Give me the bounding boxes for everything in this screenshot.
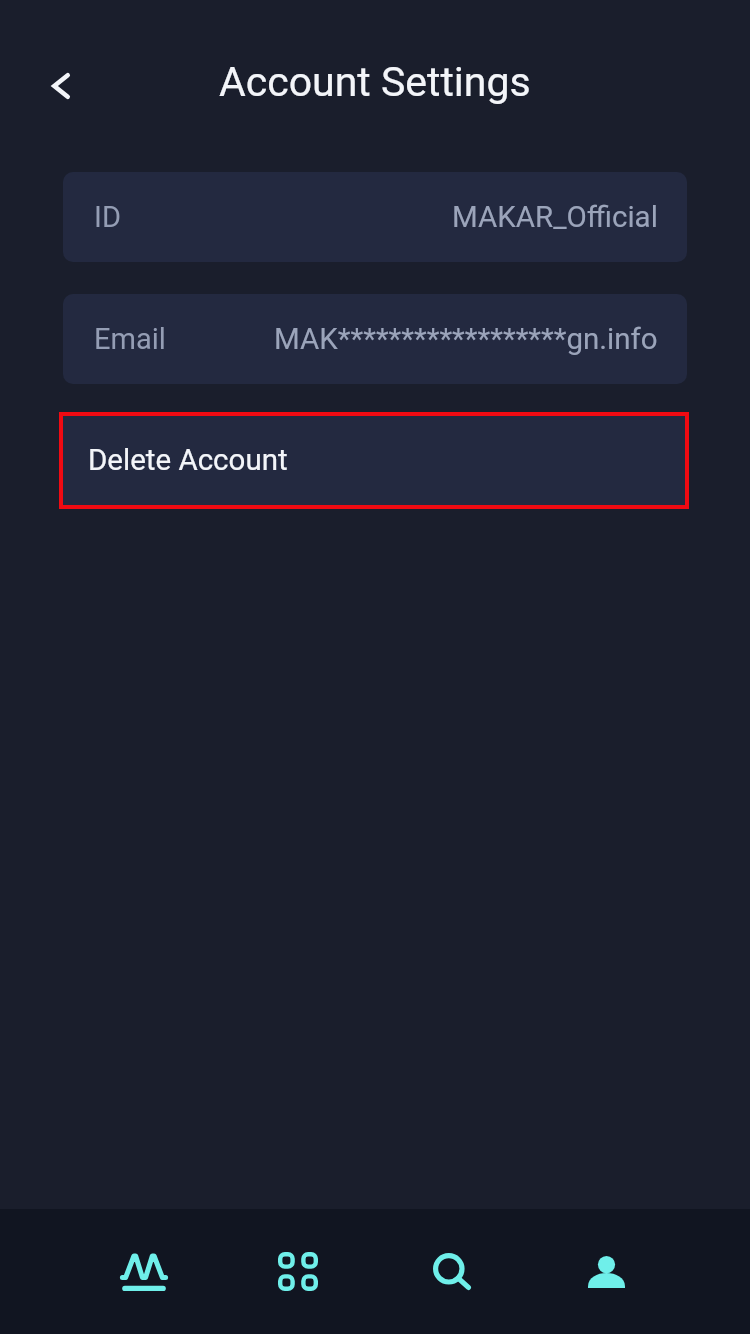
button[interactable]: Home: [67, 1209, 221, 1334]
staticText: Delete Account: [88, 443, 288, 478]
staticText: Email: [94, 322, 166, 356]
button[interactable]: Search: [375, 1209, 529, 1334]
button[interactable]: Categories: [221, 1209, 375, 1334]
button[interactable]: Email: [63, 294, 687, 384]
button[interactable]: ID: [63, 172, 687, 262]
button[interactable]: Back: [22, 47, 100, 125]
staticText: MAK******************gn.info: [274, 322, 658, 357]
staticText: ID: [94, 200, 121, 234]
staticText: Account Settings: [219, 58, 531, 106]
button[interactable]: Delete Account: [59, 412, 689, 509]
button[interactable]: Profile: [529, 1209, 683, 1334]
staticText: MAKAR_Official: [452, 200, 658, 235]
